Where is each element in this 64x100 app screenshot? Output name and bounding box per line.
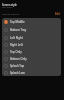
staticText: Bottom Only [10, 57, 27, 61]
button[interactable]: Left Right [2, 34, 61, 41]
staticText: Splash Low [10, 71, 25, 75]
button[interactable]: Bottom Tray [2, 26, 61, 34]
staticText: Tap action [2, 6, 13, 9]
button[interactable]: Bottom Only [2, 55, 61, 62]
staticText: Right Left [10, 43, 23, 47]
staticText: Top Only [10, 50, 22, 54]
staticText: Choose a layout [2, 13, 20, 16]
button[interactable]: Top Only [2, 48, 61, 55]
button[interactable]: Right Left [2, 41, 61, 48]
button[interactable]: Top Middle [2, 18, 61, 26]
button[interactable]: Splash Low [2, 69, 61, 76]
button[interactable]: Splash Top [2, 62, 61, 69]
button[interactable]: Edit [55, 12, 61, 16]
staticText: Splash Top [10, 64, 25, 68]
staticText: Left Right [10, 36, 23, 40]
staticText: Bottom Tray [10, 28, 27, 32]
staticText: Edit [55, 12, 61, 16]
staticText: Screen style [2, 3, 17, 7]
staticText: Top Middle [10, 20, 25, 24]
